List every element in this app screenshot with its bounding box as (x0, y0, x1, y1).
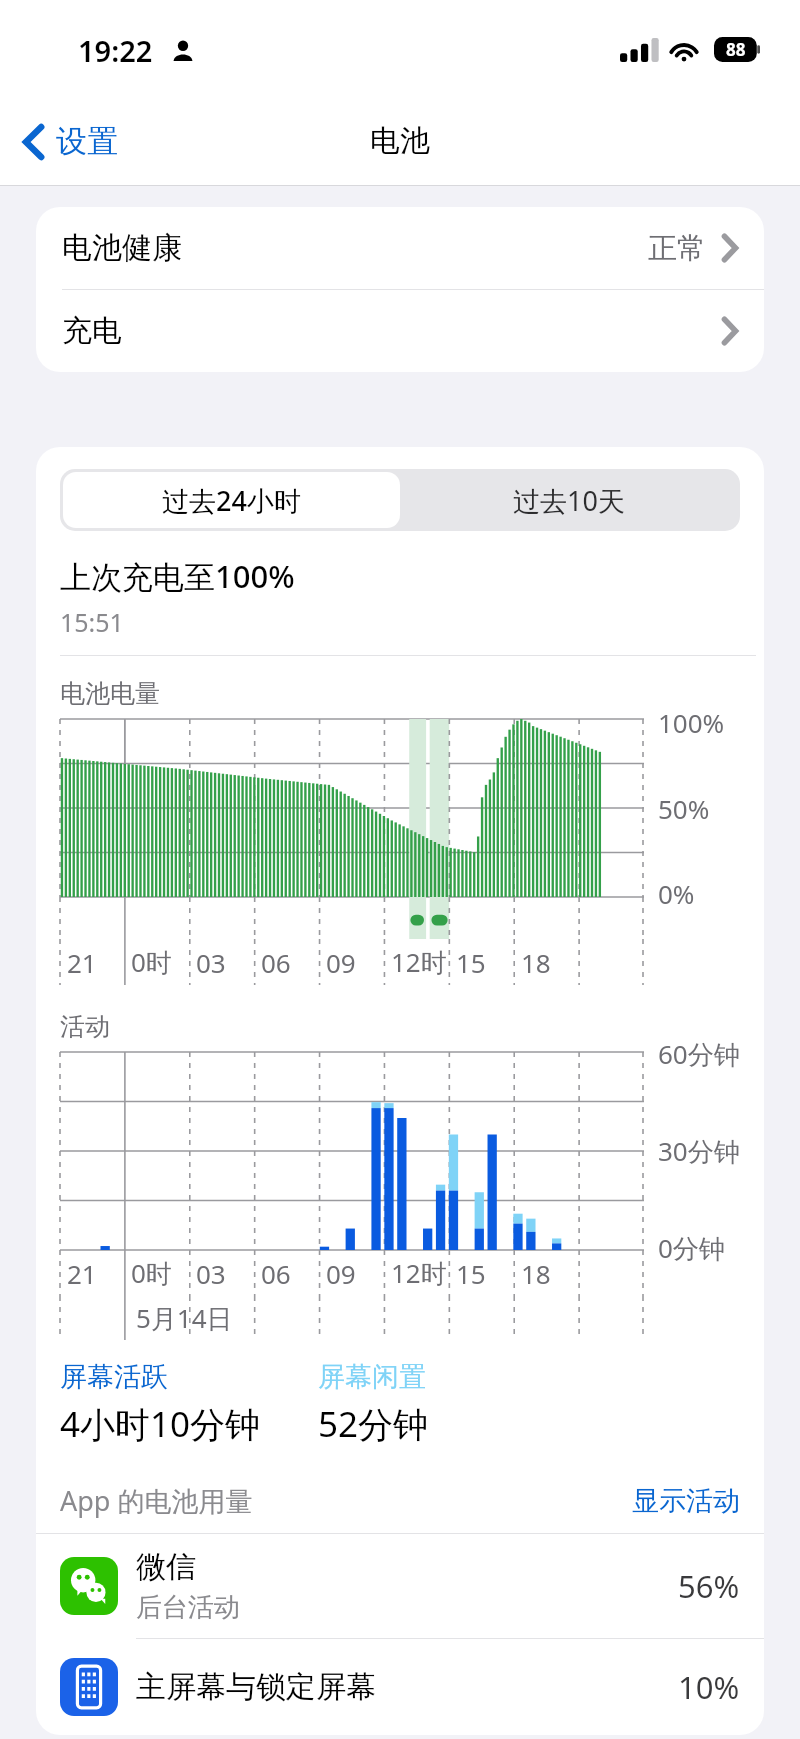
staticText: 0% (658, 876, 695, 911)
staticText: 09 (326, 945, 356, 980)
staticText: 100% (658, 705, 725, 740)
staticText: 0时 (131, 1255, 172, 1291)
staticText: 0分钟 (658, 1230, 725, 1266)
staticText: 06 (261, 1256, 291, 1291)
staticText: 5月14日 (136, 1300, 233, 1336)
staticText: 活动 (60, 1011, 110, 1042)
staticText: 56% (678, 1565, 740, 1607)
staticText: 15:51 (60, 605, 124, 639)
staticText: 52分钟 (318, 1400, 429, 1448)
staticText: 微信 (136, 1548, 196, 1586)
staticText: 15 (456, 945, 486, 980)
staticText: 0时 (131, 944, 172, 980)
button[interactable]: 显示活动 (632, 1484, 740, 1518)
staticText: 电池 (370, 122, 430, 160)
staticText: 电池电量 (60, 678, 160, 709)
staticText: 21 (67, 1256, 97, 1291)
staticText: 电池健康 (62, 229, 182, 267)
button[interactable]: 微信 (36, 1534, 764, 1638)
button[interactable]: 电池健康 (36, 207, 764, 289)
staticText: 15 (456, 1256, 486, 1291)
staticText: 过去10天 (513, 482, 625, 519)
staticText: 过去24小时 (162, 482, 301, 519)
staticText: 设置 (56, 122, 118, 161)
staticText: 显示活动 (632, 1484, 740, 1518)
staticText: 正常 (648, 230, 706, 267)
staticText: App 的电池用量 (60, 1482, 253, 1519)
staticText: 4小时10分钟 (60, 1400, 261, 1448)
button[interactable]: 充电 (36, 290, 764, 372)
button[interactable]: 主屏幕与锁定屏幕 (36, 1639, 764, 1735)
staticText: 12时 (391, 944, 447, 980)
staticText: 屏幕活跃 (60, 1360, 168, 1394)
staticText: 18 (521, 945, 551, 980)
staticText: 06 (261, 945, 291, 980)
staticText: 19:22 (78, 31, 153, 70)
staticText: 21 (67, 945, 97, 980)
staticText: 主屏幕与锁定屏幕 (136, 1668, 376, 1706)
staticText: 18 (521, 1256, 551, 1291)
staticText: 12时 (391, 1255, 447, 1291)
staticText: 屏幕闲置 (318, 1360, 426, 1394)
staticText: 03 (196, 945, 226, 980)
staticText: 上次充电至100% (60, 555, 295, 597)
button[interactable]: 设置 (14, 114, 128, 169)
staticText: 03 (196, 1256, 226, 1291)
staticText: 10% (678, 1666, 740, 1708)
staticText: 30分钟 (658, 1133, 740, 1169)
staticText: 09 (326, 1256, 356, 1291)
button[interactable]: 过去24小时 (63, 472, 400, 528)
staticText: 后台活动 (136, 1591, 240, 1624)
button[interactable]: 过去10天 (400, 472, 737, 528)
staticText: 88 (726, 38, 746, 61)
staticText: 充电 (62, 312, 122, 350)
staticText: 60分钟 (658, 1036, 740, 1072)
staticText: 50% (658, 791, 710, 826)
